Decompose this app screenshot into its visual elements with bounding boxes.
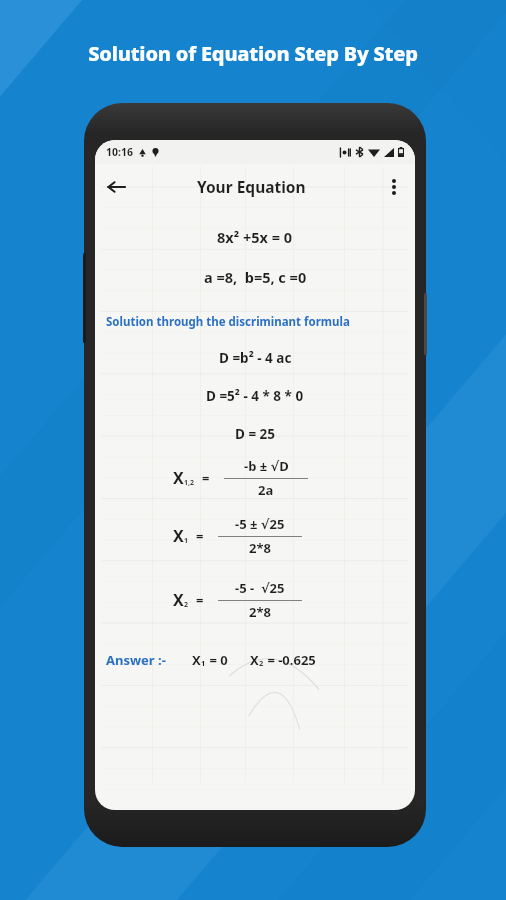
staticText: Answer :- bbox=[106, 651, 166, 669]
button[interactable]: More options bbox=[373, 166, 415, 208]
staticText: -5 ± √25 bbox=[235, 515, 285, 533]
staticText: 2a bbox=[258, 481, 274, 499]
staticText: 2 bbox=[259, 658, 264, 668]
staticText: 8x² +5x = 0 bbox=[217, 227, 293, 247]
staticText: D = 25 bbox=[235, 425, 276, 443]
staticText: X bbox=[250, 651, 259, 669]
staticText: 10:16 bbox=[106, 145, 133, 159]
staticText: 2*8 bbox=[249, 539, 271, 557]
staticText: D =b² - 4 ac bbox=[219, 349, 292, 367]
staticText: D =5² - 4 * 8 * 0 bbox=[206, 387, 304, 405]
staticText: Your Equation bbox=[197, 176, 306, 197]
staticText: = bbox=[202, 469, 210, 487]
staticText: = -0.625 bbox=[264, 651, 316, 669]
staticText: -5 - √25 bbox=[235, 579, 285, 597]
staticText: X bbox=[173, 589, 184, 611]
staticText: 1 bbox=[201, 658, 206, 668]
staticText: = 0 bbox=[206, 651, 228, 669]
staticText: 1 bbox=[184, 536, 189, 546]
staticText: = bbox=[196, 591, 204, 609]
staticText: 1,2 bbox=[184, 478, 195, 488]
staticText: X bbox=[192, 651, 201, 669]
staticText: 2 bbox=[184, 600, 189, 610]
button[interactable]: Back bbox=[95, 166, 137, 208]
staticText: 2*8 bbox=[249, 603, 271, 621]
staticText: Solution through the discriminant formul… bbox=[106, 314, 350, 330]
staticText: -b ± √D bbox=[244, 457, 289, 475]
staticText: Solution of Equation Step By Step bbox=[88, 40, 418, 67]
staticText: = bbox=[196, 527, 204, 545]
staticText: X bbox=[173, 467, 184, 489]
staticText: a =8, b=5, c =0 bbox=[204, 267, 307, 287]
staticText: X bbox=[173, 525, 184, 547]
